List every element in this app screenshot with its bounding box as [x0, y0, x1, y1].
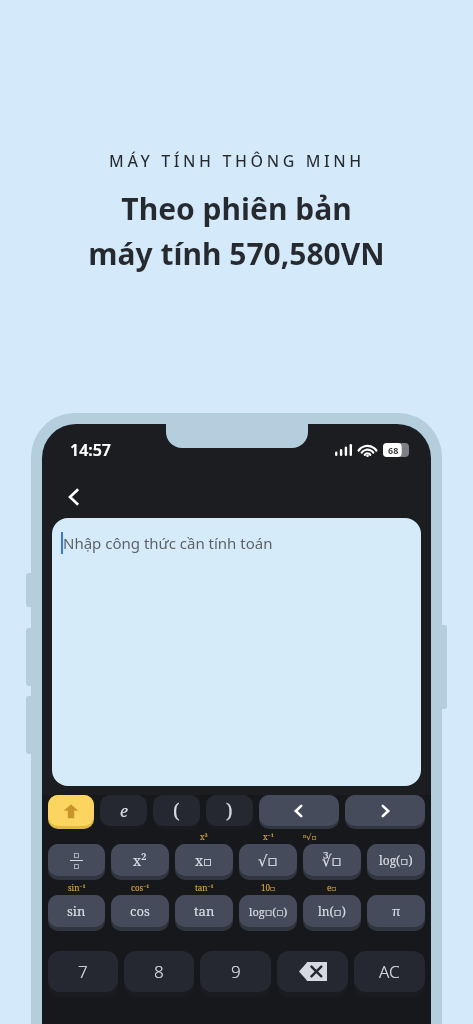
button[interactable]: 8 — [124, 951, 194, 997]
staticText: 68 — [388, 444, 399, 456]
staticText: ▫ — [73, 850, 80, 860]
staticText: 9 — [231, 960, 241, 983]
staticText: x³ — [200, 831, 208, 842]
staticText: ∛▫ — [322, 852, 342, 869]
staticText: π — [392, 902, 401, 920]
staticText: log(▫) — [379, 852, 413, 868]
button[interactable]: Delete — [277, 951, 348, 997]
staticText: e — [120, 800, 128, 822]
staticText: cos⁻¹ — [131, 882, 150, 893]
button[interactable]: 7 — [48, 951, 118, 997]
button[interactable]: Right — [345, 795, 425, 829]
button[interactable]: x▫ — [175, 844, 233, 880]
staticText: cos — [130, 902, 150, 920]
staticText: tan⁻¹ — [195, 882, 214, 893]
staticText: 7 — [78, 960, 88, 983]
button[interactable]: √▫ — [239, 844, 297, 880]
staticText: ln(▫) — [318, 903, 346, 919]
staticText: ( — [173, 798, 180, 824]
button[interactable]: x² — [111, 844, 169, 880]
button[interactable]: sin — [48, 895, 105, 931]
staticText: tan — [194, 902, 215, 920]
button[interactable]: log(▫) — [367, 844, 425, 880]
staticText: MÁY TÍNH THÔNG MINH — [109, 150, 365, 172]
staticText: x⁻¹ — [263, 831, 274, 842]
button[interactable]: ln(▫) — [303, 895, 361, 931]
staticText: ▫ — [73, 861, 80, 871]
staticText: sin — [67, 902, 86, 920]
button[interactable]: Back — [54, 477, 94, 517]
staticText: 14:57 — [70, 439, 112, 461]
staticText: 10▫ — [261, 882, 276, 893]
staticText: sin⁻¹ — [68, 882, 86, 893]
staticText: √▫ — [258, 852, 278, 869]
button[interactable]: ∛▫ — [303, 844, 361, 880]
button[interactable]: log▫(▫) — [239, 895, 297, 931]
button[interactable]: tan — [175, 895, 233, 931]
staticText: e▫ — [327, 882, 337, 893]
button[interactable]: π — [367, 895, 425, 931]
button[interactable]: ( — [153, 795, 200, 829]
staticText: x▫ — [195, 851, 213, 870]
button[interactable]: Left — [259, 795, 339, 829]
staticText: ⁿ√▫ — [303, 831, 317, 842]
staticText: ) — [226, 798, 233, 824]
button[interactable]: e — [100, 795, 147, 829]
button[interactable]: cos — [111, 895, 169, 931]
button[interactable]: ) — [206, 795, 253, 829]
staticText: AC — [379, 960, 400, 983]
button[interactable]: AC — [354, 951, 425, 997]
staticText: 8 — [154, 960, 164, 983]
staticText: Theo phiên bản — [121, 188, 352, 229]
staticText: Nhập công thức cần tính toán — [63, 533, 273, 553]
staticText: log▫(▫) — [249, 904, 288, 919]
staticText: x² — [133, 851, 147, 870]
button[interactable]: Nhập công thức cần tính toán — [52, 518, 421, 786]
button[interactable]: 9 — [200, 951, 271, 997]
button[interactable]: ▫ — [48, 844, 105, 880]
staticText: máy tính 570,580VN — [88, 233, 385, 274]
button[interactable]: Shift — [48, 795, 94, 829]
